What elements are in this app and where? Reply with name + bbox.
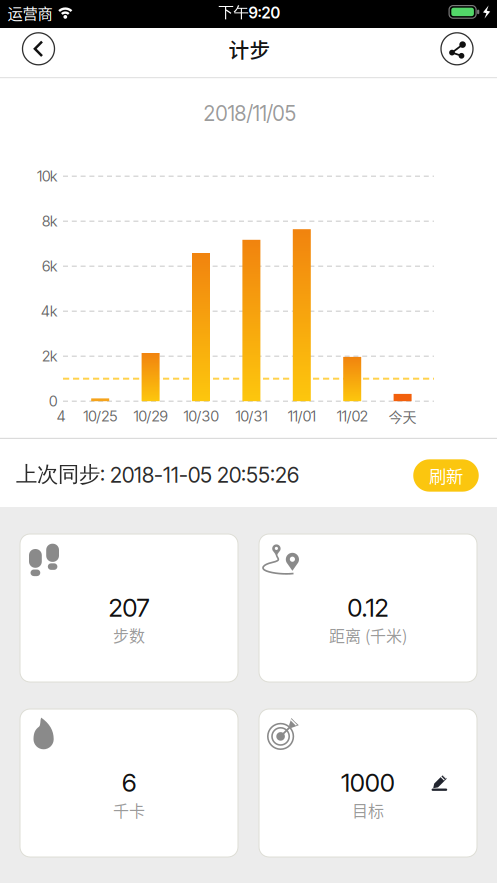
- staticText: 2018/11/05: [203, 101, 295, 126]
- button[interactable]: 刷新: [413, 459, 479, 492]
- staticText: 10k: [37, 167, 57, 185]
- staticText: 距离 (千米): [329, 623, 407, 647]
- staticText: 下午9:20: [218, 3, 280, 22]
- staticText: 0.12: [347, 592, 388, 623]
- staticText: 6k: [42, 257, 57, 275]
- staticText: 1000: [341, 767, 395, 798]
- button[interactable]: 返回: [20, 31, 56, 67]
- staticText: 4: [57, 407, 66, 425]
- staticText: 8k: [42, 212, 57, 230]
- staticText: 上次同步: 2018-11-05 20:55:26: [16, 461, 299, 488]
- staticText: 207: [108, 592, 149, 623]
- staticText: 6: [122, 767, 136, 798]
- staticText: 11/02: [337, 407, 368, 425]
- staticText: 千卡: [113, 798, 145, 822]
- button[interactable]: 分享: [439, 31, 475, 67]
- staticText: 步数: [113, 623, 145, 647]
- staticText: 10/30: [183, 407, 218, 425]
- staticText: 今天: [389, 406, 417, 426]
- staticText: 2k: [42, 347, 57, 365]
- staticText: 目标: [352, 798, 384, 822]
- staticText: 10/31: [235, 407, 267, 425]
- staticText: 计步: [228, 34, 270, 64]
- staticText: 10/25: [83, 407, 117, 425]
- staticText: 4k: [41, 302, 57, 320]
- staticText: 11/01: [288, 407, 316, 425]
- staticText: 刷新: [429, 463, 463, 488]
- staticText: 10/29: [134, 407, 168, 425]
- button[interactable]: 编辑目标: [424, 767, 454, 797]
- staticText: 运营商: [7, 1, 52, 24]
- staticText: 0: [49, 392, 57, 410]
